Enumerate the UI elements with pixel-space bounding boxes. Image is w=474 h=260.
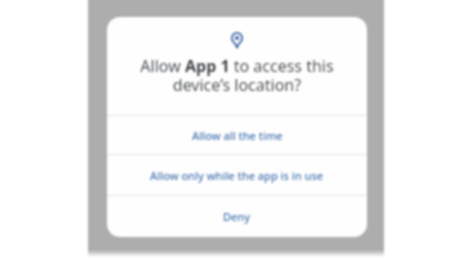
- staticText: Allow all the time: [192, 128, 283, 143]
- staticText: Allow App 1 to access this device’s loca…: [107, 55, 367, 96]
- button[interactable]: Allow all the time: [107, 116, 367, 154]
- staticText: Deny: [223, 209, 251, 224]
- button[interactable]: Deny: [107, 196, 367, 237]
- button[interactable]: Allow only while the app is in use: [107, 155, 367, 195]
- staticText: Allow only while the app is in use: [150, 168, 324, 183]
